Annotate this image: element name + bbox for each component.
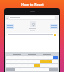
button[interactable]: Back: [6, 17, 8, 19]
staticText: How to Reset: [21, 2, 44, 7]
button[interactable]: [9, 16, 55, 19]
button[interactable]: Key: [53, 56, 58, 59]
button[interactable]: [7, 33, 57, 36]
button[interactable]: Key: [34, 64, 40, 67]
other: Device: [30, 21, 36, 27]
button[interactable]: Key: [46, 60, 52, 63]
button[interactable]: Key: [40, 60, 46, 63]
button[interactable]: [6, 24, 14, 29]
button[interactable]: [50, 24, 58, 29]
